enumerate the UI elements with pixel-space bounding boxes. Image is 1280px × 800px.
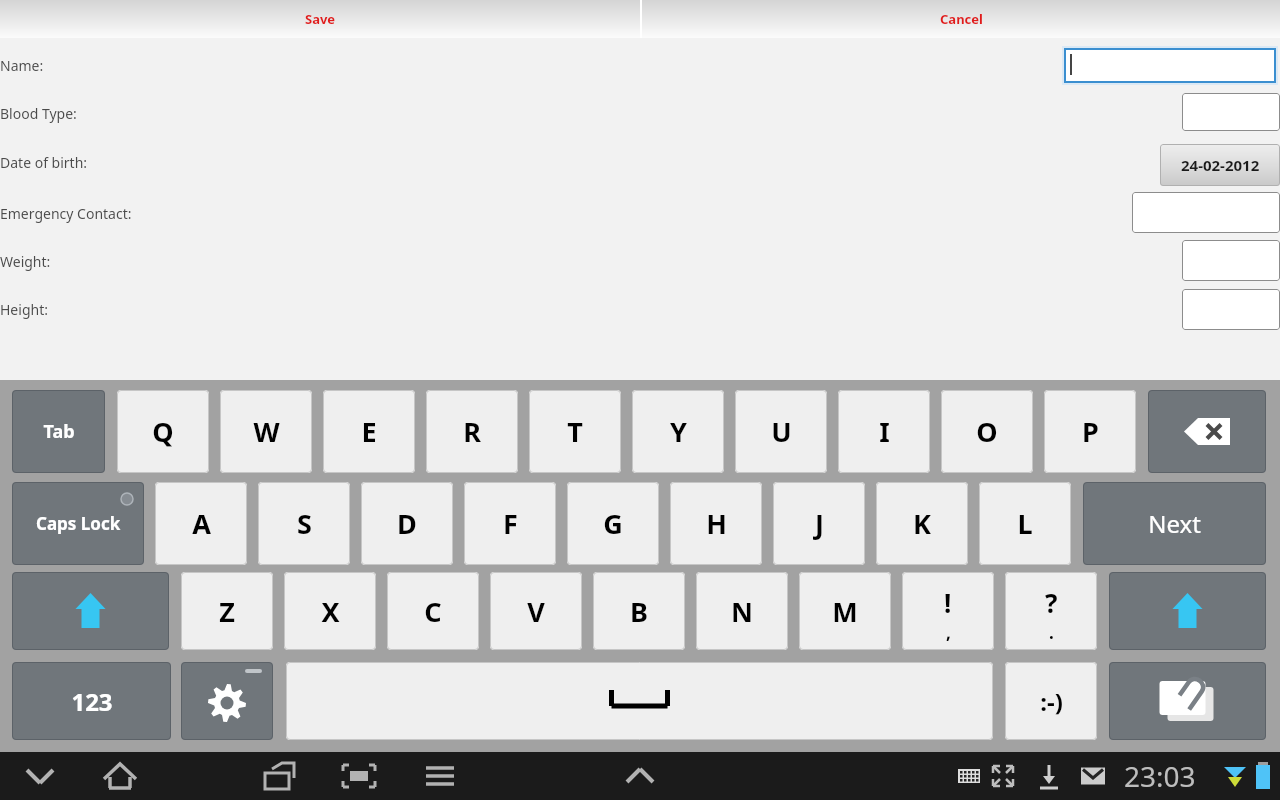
button[interactable]: Recent apps xyxy=(253,756,305,796)
staticText: B xyxy=(630,593,648,630)
button[interactable]: B xyxy=(593,572,685,650)
staticText: R xyxy=(463,413,481,450)
staticText: . xyxy=(1049,621,1054,644)
staticText: 123 xyxy=(71,685,113,718)
staticText: H xyxy=(706,505,727,542)
button[interactable]: C xyxy=(387,572,479,650)
staticText: Save xyxy=(305,10,336,28)
button[interactable]: S xyxy=(258,482,350,565)
button[interactable]: Cancel xyxy=(642,0,1280,38)
staticText: :-) xyxy=(1040,685,1063,718)
staticText: G xyxy=(603,505,623,542)
staticText: Z xyxy=(219,593,235,630)
button[interactable]: Space xyxy=(286,662,993,740)
button[interactable]: V xyxy=(490,572,582,650)
button[interactable]: Next xyxy=(1083,482,1266,565)
button[interactable]: Y xyxy=(632,390,724,473)
button[interactable]: Hide keyboard xyxy=(14,756,66,796)
staticText: Height: xyxy=(0,300,48,319)
staticText: ? xyxy=(1045,585,1058,620)
button[interactable] xyxy=(1064,48,1276,83)
staticText: J xyxy=(815,505,824,542)
staticText: N xyxy=(731,593,753,630)
button[interactable]: 123 xyxy=(12,662,171,740)
staticText: I xyxy=(879,413,890,450)
button[interactable]: O xyxy=(941,390,1033,473)
staticText: Y xyxy=(670,413,687,450)
button[interactable]: Backspace xyxy=(1148,390,1266,473)
button[interactable]: J xyxy=(773,482,865,565)
button[interactable]: R xyxy=(426,390,518,473)
staticText: S xyxy=(297,505,312,542)
button[interactable]: Tab xyxy=(12,390,105,473)
button[interactable]: Z xyxy=(181,572,273,650)
staticText: Name: xyxy=(0,56,44,75)
staticText: O xyxy=(976,413,998,450)
staticText: E xyxy=(361,413,377,450)
staticText: ! xyxy=(944,585,952,620)
button[interactable]: D xyxy=(361,482,453,565)
staticText: X xyxy=(321,593,340,630)
staticText: , xyxy=(946,621,951,644)
button[interactable]: F xyxy=(464,482,556,565)
button[interactable]: Attachment xyxy=(1109,662,1266,740)
button[interactable]: L xyxy=(979,482,1071,565)
button[interactable]: G xyxy=(567,482,659,565)
staticText: Q xyxy=(152,413,174,450)
button[interactable]: T xyxy=(529,390,621,473)
button[interactable]: E xyxy=(323,390,415,473)
staticText: W xyxy=(253,413,280,450)
button[interactable]: M xyxy=(799,572,891,650)
staticText: 24-02-2012 xyxy=(1181,155,1260,175)
staticText: T xyxy=(567,413,583,450)
button[interactable]: N xyxy=(696,572,788,650)
button[interactable]: ! xyxy=(902,572,994,650)
button[interactable] xyxy=(1132,192,1280,233)
button[interactable]: X xyxy=(284,572,376,650)
staticText: A xyxy=(192,505,211,542)
staticText: L xyxy=(1017,505,1033,542)
button[interactable]: Caps Lock xyxy=(12,482,144,565)
button[interactable]: 24-02-2012 xyxy=(1160,144,1280,186)
staticText: C xyxy=(424,593,442,630)
other: Battery xyxy=(1250,761,1276,791)
staticText: Cancel xyxy=(940,10,983,28)
button[interactable]: :-) xyxy=(1005,662,1097,740)
other: Keyboard status xyxy=(954,761,984,791)
staticText: Weight: xyxy=(0,252,51,271)
button[interactable] xyxy=(1182,289,1280,330)
staticText: P xyxy=(1082,413,1099,450)
button[interactable]: U xyxy=(735,390,827,473)
button[interactable]: Home xyxy=(94,756,146,796)
other: Signal xyxy=(1222,761,1248,791)
button[interactable]: Expand xyxy=(614,756,666,796)
button[interactable]: Shift xyxy=(1109,572,1266,650)
staticText: Emergency Contact: xyxy=(0,204,132,223)
button[interactable]: K xyxy=(876,482,968,565)
button[interactable]: Shift xyxy=(12,572,169,650)
other: Mail xyxy=(1078,761,1108,791)
button[interactable]: W xyxy=(220,390,312,473)
button[interactable]: Q xyxy=(117,390,209,473)
staticText: M xyxy=(832,593,858,630)
button[interactable]: A xyxy=(155,482,247,565)
staticText: Caps Lock xyxy=(36,512,121,535)
button[interactable]: I xyxy=(838,390,930,473)
button[interactable]: H xyxy=(670,482,762,565)
staticText: 23:03 xyxy=(1124,757,1196,795)
button[interactable]: ? xyxy=(1005,572,1097,650)
other: Resize xyxy=(988,761,1018,791)
button[interactable]: P xyxy=(1044,390,1136,473)
button[interactable]: Save xyxy=(0,0,640,38)
button[interactable] xyxy=(1182,240,1280,281)
staticText: K xyxy=(913,505,931,542)
staticText: U xyxy=(771,413,792,450)
button[interactable]: Settings xyxy=(181,662,273,740)
button[interactable]: Menu xyxy=(414,756,466,796)
button[interactable] xyxy=(1182,93,1280,131)
staticText: F xyxy=(503,505,518,542)
staticText: Tab xyxy=(43,419,75,444)
staticText: Date of birth: xyxy=(0,153,88,172)
button[interactable]: Fullscreen xyxy=(333,756,385,796)
staticText: V xyxy=(527,593,545,630)
